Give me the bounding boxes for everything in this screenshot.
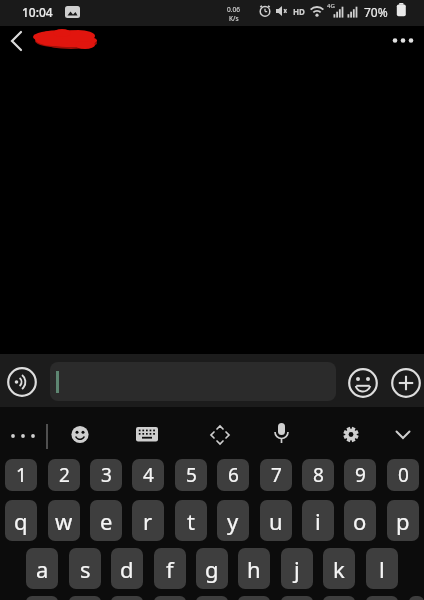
button[interactable]: t bbox=[175, 500, 207, 541]
button[interactable]: q bbox=[5, 500, 37, 541]
button[interactable]: 4 bbox=[132, 459, 164, 491]
staticText: 70% bbox=[364, 4, 388, 20]
button[interactable] bbox=[341, 425, 361, 445]
staticText: HD bbox=[293, 6, 305, 17]
button[interactable] bbox=[4, 424, 42, 448]
button[interactable]: 7 bbox=[260, 459, 292, 491]
button[interactable] bbox=[26, 596, 58, 600]
staticText: K/s bbox=[229, 14, 239, 23]
staticText: 5 bbox=[186, 462, 197, 488]
staticText: y bbox=[227, 506, 239, 536]
button[interactable] bbox=[208, 423, 232, 447]
staticText: 2 bbox=[59, 462, 70, 488]
button[interactable]: j bbox=[281, 548, 313, 589]
button[interactable] bbox=[70, 425, 90, 445]
staticText: 0 bbox=[398, 462, 409, 488]
button[interactable] bbox=[366, 596, 398, 600]
button[interactable] bbox=[386, 30, 420, 52]
button[interactable]: f bbox=[154, 548, 186, 589]
button[interactable] bbox=[50, 362, 336, 401]
button[interactable] bbox=[323, 596, 355, 600]
button[interactable]: k bbox=[323, 548, 355, 589]
staticText: 9 bbox=[355, 462, 366, 488]
staticText: 10:04 bbox=[22, 4, 53, 20]
button[interactable]: y bbox=[217, 500, 249, 541]
button[interactable]: 5 bbox=[175, 459, 207, 491]
staticText: 6 bbox=[228, 462, 239, 488]
staticText: k bbox=[333, 554, 345, 584]
button[interactable]: u bbox=[260, 500, 292, 541]
button[interactable] bbox=[391, 368, 421, 398]
staticText: r bbox=[143, 506, 153, 536]
button[interactable]: l bbox=[366, 548, 398, 589]
staticText: a bbox=[36, 554, 49, 584]
button[interactable] bbox=[392, 426, 414, 444]
staticText: 3 bbox=[101, 462, 112, 488]
button[interactable]: e bbox=[90, 500, 122, 541]
button[interactable]: o bbox=[344, 500, 376, 541]
button[interactable] bbox=[69, 596, 101, 600]
staticText: 8 bbox=[313, 462, 324, 488]
staticText: 4G bbox=[327, 2, 335, 10]
staticText: g bbox=[205, 554, 219, 584]
button[interactable]: 0 bbox=[387, 459, 419, 491]
button[interactable]: s bbox=[69, 548, 101, 589]
staticText: 7 bbox=[271, 462, 282, 488]
button[interactable] bbox=[111, 596, 143, 600]
button[interactable]: 9 bbox=[344, 459, 376, 491]
staticText: 0.06 bbox=[227, 5, 240, 14]
button[interactable] bbox=[238, 596, 270, 600]
button[interactable] bbox=[348, 368, 378, 398]
staticText: u bbox=[269, 506, 283, 536]
button[interactable] bbox=[7, 367, 37, 397]
button[interactable]: p bbox=[387, 500, 419, 541]
staticText: q bbox=[14, 506, 28, 536]
staticText: t bbox=[187, 506, 195, 536]
button[interactable] bbox=[196, 596, 228, 600]
button[interactable]: r bbox=[132, 500, 164, 541]
button[interactable] bbox=[272, 422, 291, 447]
button[interactable]: 3 bbox=[90, 459, 122, 491]
button[interactable]: a bbox=[26, 548, 58, 589]
button[interactable]: w bbox=[48, 500, 80, 541]
staticText: w bbox=[55, 506, 73, 536]
staticText: p bbox=[396, 506, 410, 536]
staticText: h bbox=[247, 554, 261, 584]
staticText: j bbox=[294, 554, 300, 584]
button[interactable]: h bbox=[238, 548, 270, 589]
staticText: 1 bbox=[16, 462, 27, 488]
staticText: l bbox=[379, 554, 385, 584]
staticText: o bbox=[353, 506, 367, 536]
button[interactable]: d bbox=[111, 548, 143, 589]
button[interactable]: 1 bbox=[5, 459, 37, 491]
button[interactable] bbox=[154, 596, 186, 600]
staticText: d bbox=[120, 554, 134, 584]
button[interactable] bbox=[136, 427, 158, 442]
button[interactable] bbox=[281, 596, 313, 600]
button[interactable]: g bbox=[196, 548, 228, 589]
button[interactable] bbox=[4, 28, 32, 54]
staticText: 4 bbox=[143, 462, 154, 488]
button[interactable]: i bbox=[302, 500, 334, 541]
staticText: f bbox=[166, 554, 174, 584]
button[interactable]: 8 bbox=[302, 459, 334, 491]
button[interactable] bbox=[409, 596, 424, 600]
button[interactable]: 2 bbox=[48, 459, 80, 491]
staticText: s bbox=[80, 554, 91, 584]
button[interactable]: 6 bbox=[217, 459, 249, 491]
staticText: e bbox=[100, 506, 113, 536]
staticText: i bbox=[315, 506, 321, 536]
